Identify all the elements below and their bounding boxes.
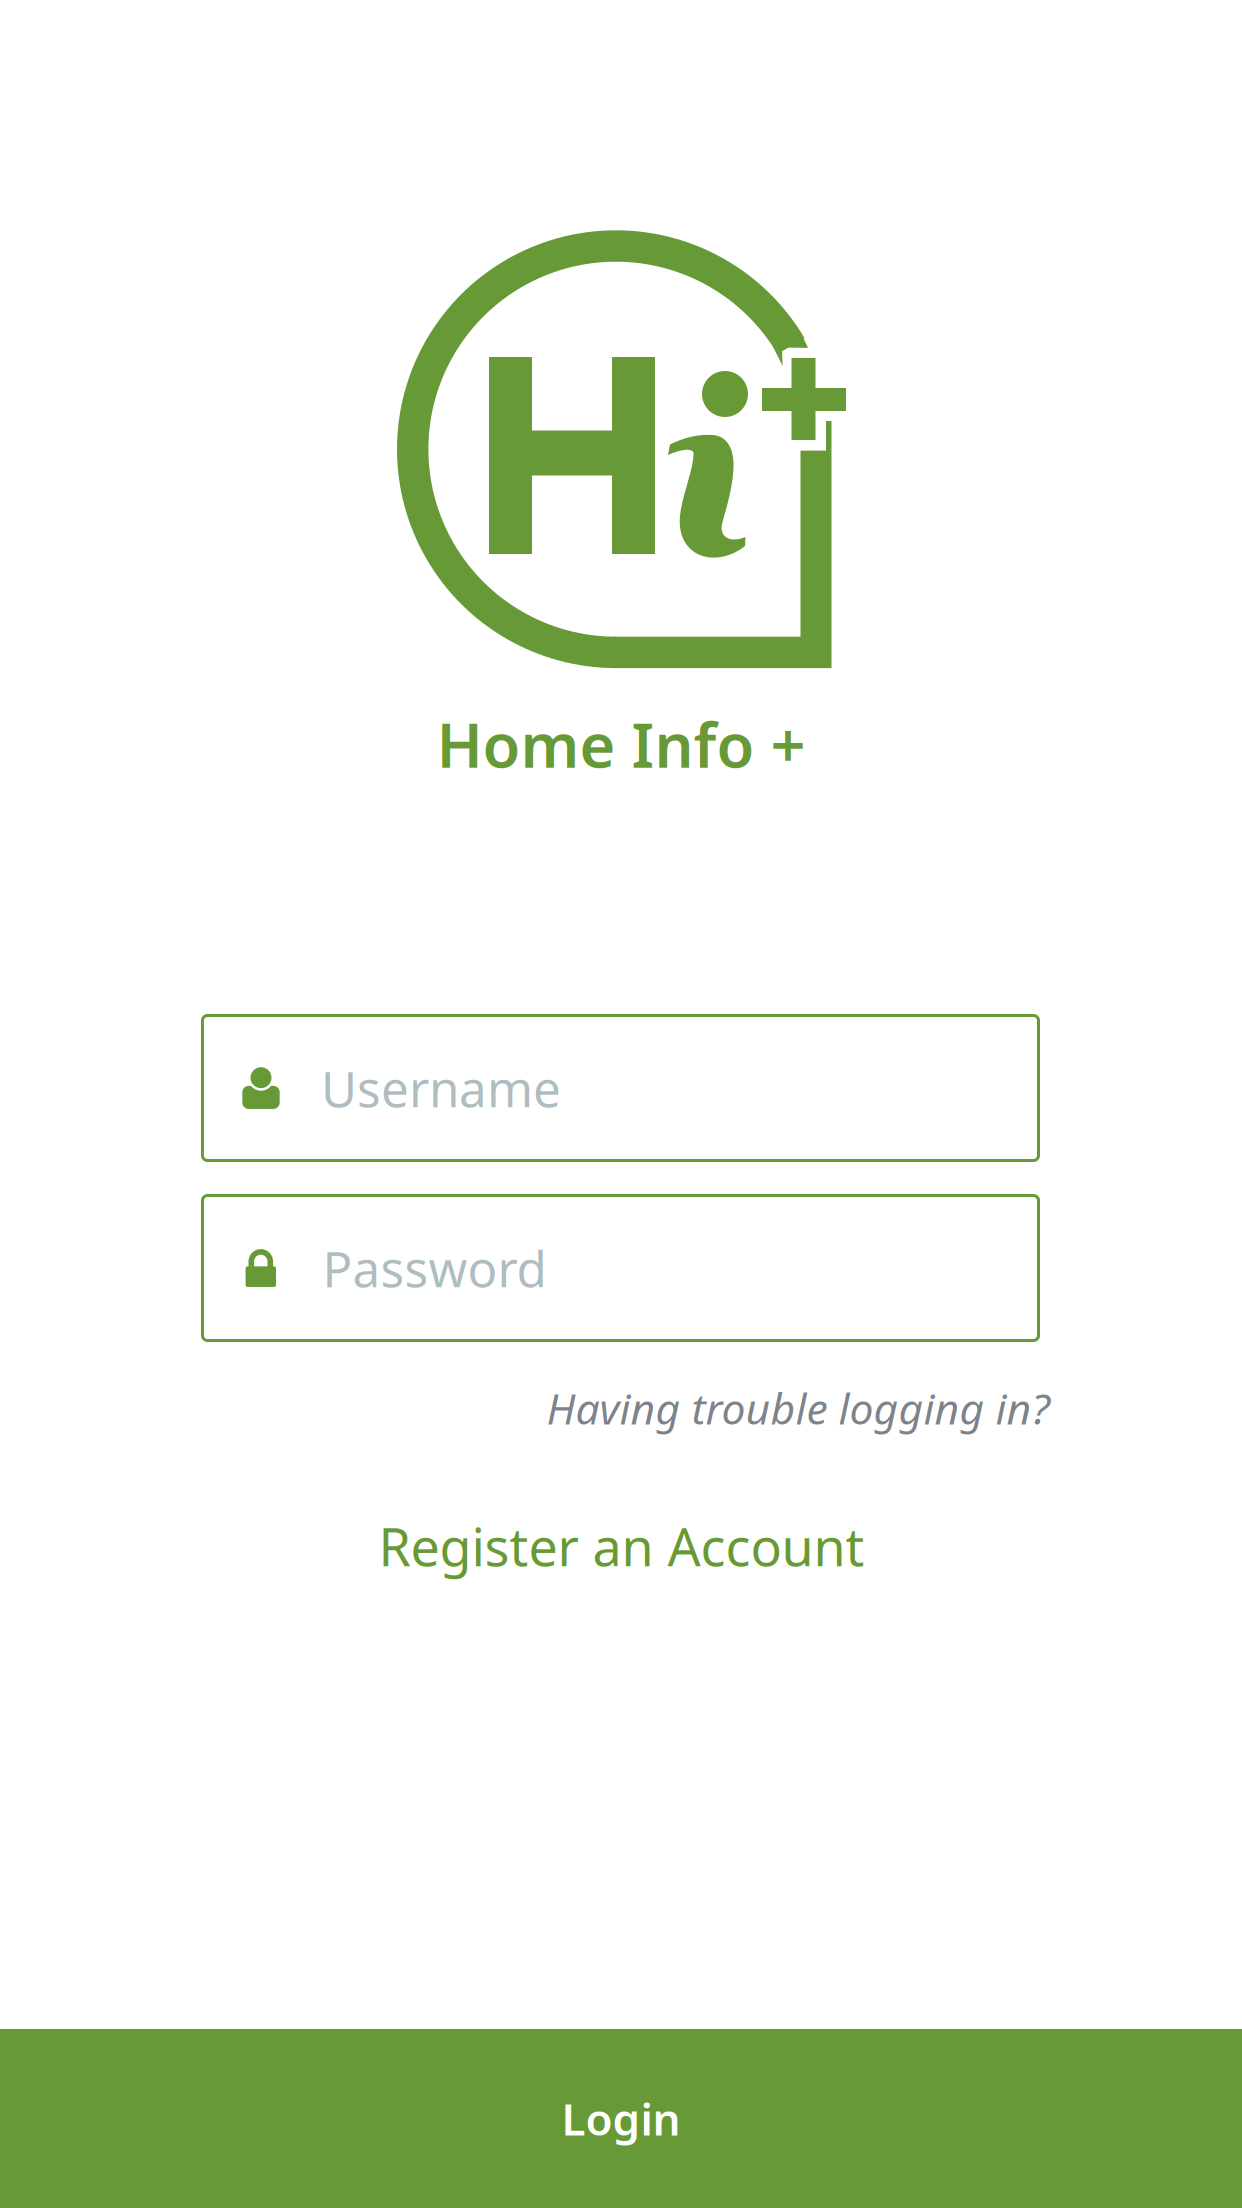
button[interactable]: Username [201,1014,1040,1162]
staticText: Password [322,1235,546,1301]
staticText: Home Info + [436,703,805,785]
staticText: Register an Account [378,1511,864,1581]
staticText: Having trouble logging in? [546,1380,1049,1436]
button[interactable]: Login [0,2029,1242,2208]
staticText: Login [561,2089,680,2148]
staticText: Username [321,1055,561,1121]
button[interactable]: Register an Account [378,1511,864,1581]
button[interactable]: Password [201,1194,1040,1342]
button[interactable]: Having trouble logging in? [546,1380,1049,1436]
